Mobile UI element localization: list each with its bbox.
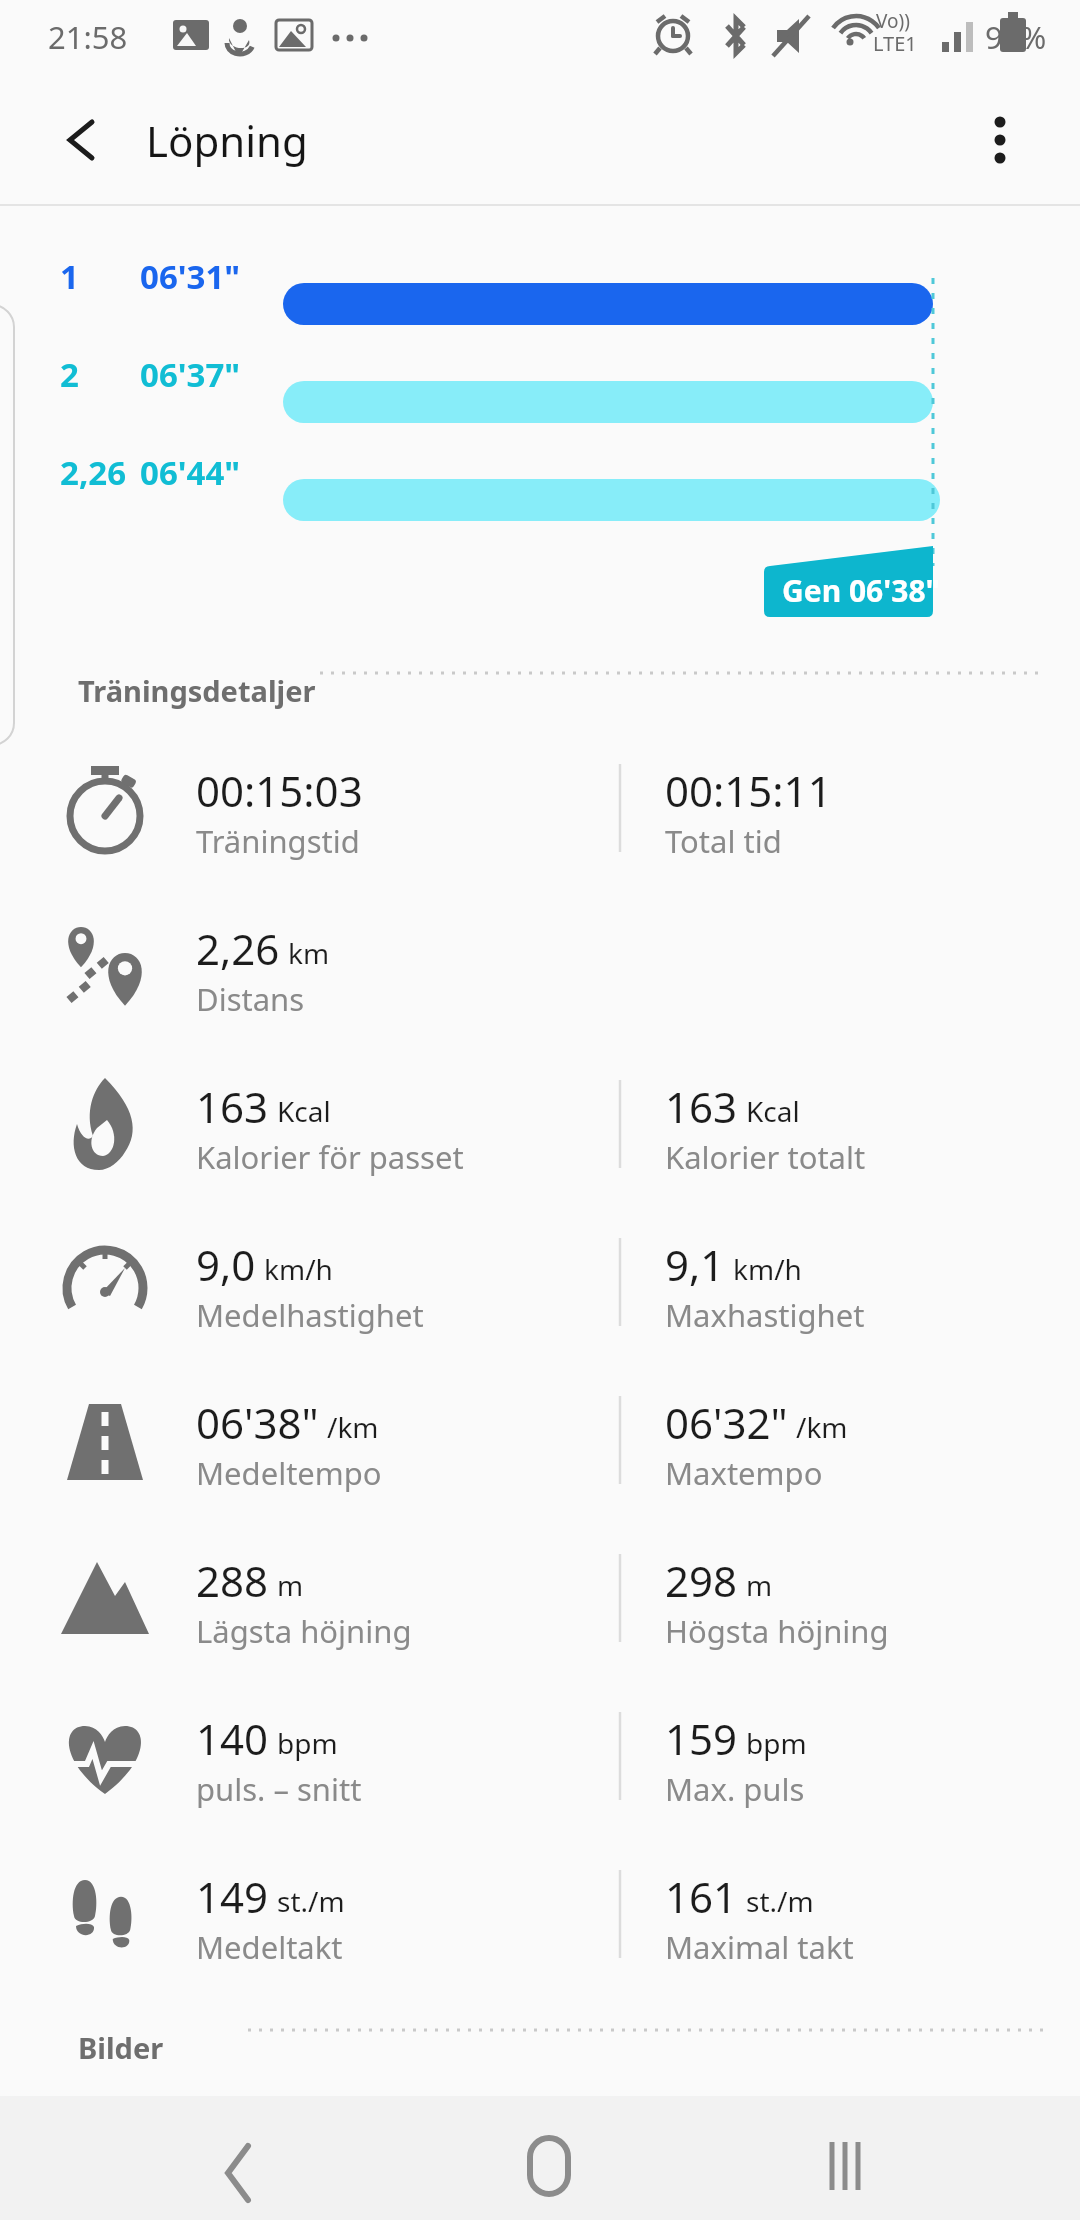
staticText: 159	[665, 1710, 738, 1767]
staticText: Total tid	[665, 820, 782, 862]
button[interactable]: 149	[0, 1858, 1080, 2016]
staticText: Maxtempo	[665, 1452, 823, 1494]
staticText: Gen 06'38"	[782, 570, 940, 611]
staticText: Kalorier totalt	[665, 1136, 866, 1178]
staticText: 06'38"	[196, 1394, 319, 1451]
button[interactable]: 140	[0, 1700, 1080, 1858]
staticText: Träningstid	[196, 820, 360, 862]
staticText: Högsta höjning	[665, 1610, 889, 1652]
staticText: km/h	[264, 1250, 333, 1288]
staticText: Kalorier för passet	[196, 1136, 464, 1178]
staticText: Medeltempo	[196, 1452, 382, 1494]
staticText: st./m	[277, 1882, 345, 1920]
staticText: puls. – snitt	[196, 1768, 362, 1810]
staticText: m	[277, 1566, 304, 1604]
staticText: Kcal	[746, 1092, 800, 1130]
staticText: 163	[665, 1078, 738, 1135]
staticText: 06'44"	[140, 450, 241, 495]
staticText: Lägsta höjning	[196, 1610, 412, 1652]
staticText: 163	[196, 1078, 269, 1135]
staticText: bpm	[746, 1724, 807, 1762]
staticText: 140	[196, 1710, 269, 1767]
button[interactable]: Back	[44, 100, 124, 180]
staticText: 1	[60, 254, 150, 299]
staticText: 161	[665, 1868, 738, 1925]
staticText: 00:15:11	[665, 762, 832, 819]
staticText: Maximal takt	[665, 1926, 854, 1968]
staticText: LTE1	[873, 30, 917, 57]
staticText: 2,26	[60, 450, 150, 495]
button[interactable]: 00:15:03	[0, 752, 1080, 910]
staticText: 2,26	[196, 920, 280, 977]
button[interactable]: 9,0	[0, 1226, 1080, 1384]
staticText: Kcal	[277, 1092, 331, 1130]
staticText: 149	[196, 1868, 269, 1925]
staticText: km	[288, 934, 330, 972]
button[interactable]: Recent apps	[780, 2098, 900, 2218]
button[interactable]: 2,26	[0, 910, 1080, 1068]
staticText: /km	[796, 1408, 848, 1446]
staticText: Löpning	[146, 112, 308, 169]
staticText: 00:15:03	[196, 762, 363, 819]
staticText: 288	[196, 1552, 269, 1609]
staticText: 2	[60, 352, 150, 397]
staticText: st./m	[746, 1882, 814, 1920]
staticText: Distans	[196, 978, 305, 1020]
button[interactable]: More options	[960, 100, 1040, 180]
staticText: Medeltakt	[196, 1926, 343, 1968]
staticText: 298	[665, 1552, 738, 1609]
button[interactable]: Back	[180, 2098, 300, 2218]
staticText: Träningsdetaljer	[78, 671, 316, 710]
staticText: 9,0	[196, 1236, 256, 1293]
button[interactable]: Home	[480, 2098, 600, 2218]
staticText: Bilder	[78, 2028, 164, 2067]
staticText: Vo))	[876, 8, 910, 34]
staticText: Maxhastighet	[665, 1294, 865, 1336]
staticText: Max. puls	[665, 1768, 805, 1810]
button[interactable]: 163	[0, 1068, 1080, 1226]
staticText: km/h	[733, 1250, 802, 1288]
staticText: Medelhastighet	[196, 1294, 424, 1336]
staticText: 21:58	[48, 16, 128, 58]
staticText: 06'37"	[140, 352, 241, 397]
staticText: 06'32"	[665, 1394, 788, 1451]
staticText: /km	[327, 1408, 379, 1446]
staticText: m	[746, 1566, 773, 1604]
staticText: bpm	[277, 1724, 338, 1762]
button[interactable]: 06'38"	[0, 1384, 1080, 1542]
staticText: 9,1	[665, 1236, 725, 1293]
button[interactable]: 288	[0, 1542, 1080, 1700]
staticText: 93%	[985, 16, 1047, 58]
staticText: 06'31"	[140, 254, 241, 299]
